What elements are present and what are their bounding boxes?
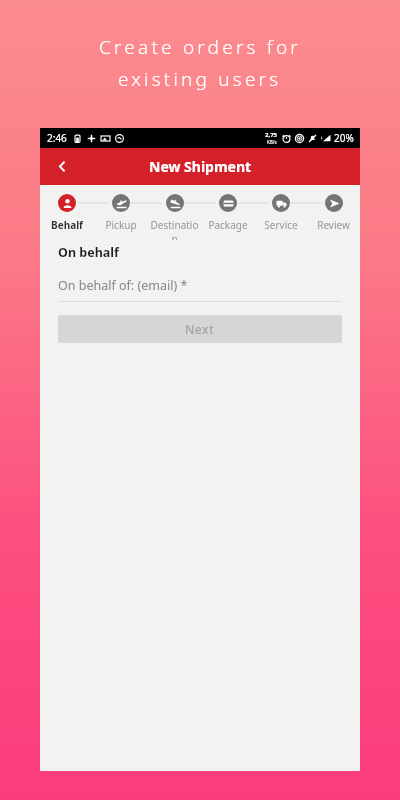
staticText: On behalf	[58, 244, 119, 261]
staticText: 20%	[334, 131, 354, 145]
staticText: Review	[317, 218, 350, 232]
staticText: Package	[208, 218, 248, 232]
button[interactable]: Review	[307, 185, 360, 232]
staticText: existing users	[118, 66, 282, 92]
staticText: Create orders for	[99, 34, 301, 60]
staticText: Pickup	[105, 218, 137, 232]
staticText: New Shipment	[149, 157, 252, 176]
staticText: 2,75	[265, 131, 278, 139]
staticText: Service	[264, 218, 298, 232]
button[interactable]: On behalf of: (email) *	[58, 277, 342, 302]
button[interactable]: Package	[201, 185, 254, 232]
staticText: Next	[185, 321, 215, 337]
staticText: 2:46	[47, 131, 67, 145]
staticText: Destination	[148, 218, 201, 240]
staticText: On behalf of: (email) *	[58, 277, 188, 294]
button[interactable]: Destination	[148, 185, 201, 240]
staticText: KB/s	[267, 139, 277, 145]
button[interactable]: Back	[40, 148, 84, 185]
button[interactable]: Service	[254, 185, 307, 232]
button[interactable]: Next	[58, 315, 342, 343]
staticText: Behalf	[51, 218, 83, 232]
button[interactable]: Behalf	[40, 185, 94, 232]
button[interactable]: Pickup	[94, 185, 148, 232]
